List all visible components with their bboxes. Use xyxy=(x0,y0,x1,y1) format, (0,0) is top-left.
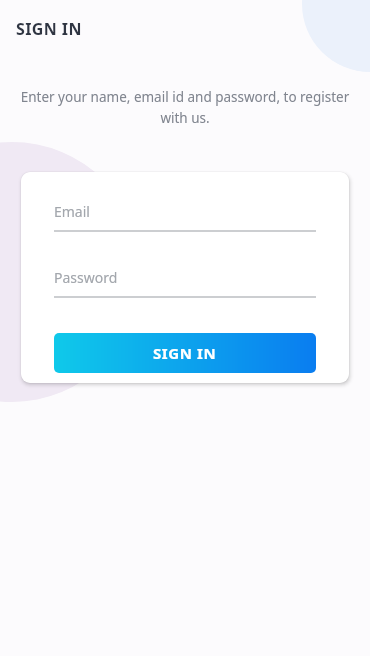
button[interactable]: Password xyxy=(54,268,316,298)
staticText: Email xyxy=(54,202,90,221)
button[interactable]: SIGN IN xyxy=(54,333,316,373)
staticText: Enter your name, email id and password, … xyxy=(8,88,362,127)
staticText: SIGN IN xyxy=(153,343,217,363)
staticText: Password xyxy=(54,268,118,287)
button[interactable]: Email xyxy=(54,202,316,232)
staticText: SIGN IN xyxy=(16,18,82,40)
